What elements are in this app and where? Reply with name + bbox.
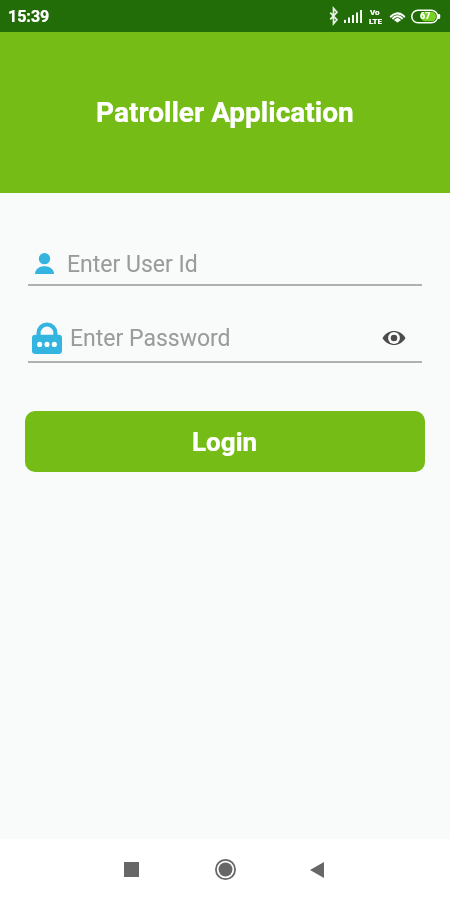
staticText: 67 xyxy=(420,11,431,22)
staticText: Enter User Id xyxy=(67,251,198,278)
button[interactable]: Show password xyxy=(377,321,411,355)
staticText: Vo xyxy=(370,8,380,17)
button[interactable]: Back xyxy=(293,846,340,893)
button[interactable]: Recent apps xyxy=(108,846,155,893)
staticText: Patroller Application xyxy=(96,96,354,129)
button[interactable]: Enter Password xyxy=(28,321,422,363)
staticText: Login xyxy=(192,427,258,457)
staticText: 15:39 xyxy=(8,7,50,26)
staticText: Enter Password xyxy=(70,325,231,352)
button[interactable]: Home xyxy=(202,846,249,893)
button[interactable]: Login xyxy=(25,411,425,472)
staticText: LTE xyxy=(369,17,382,24)
button[interactable]: Enter User Id xyxy=(28,247,422,286)
